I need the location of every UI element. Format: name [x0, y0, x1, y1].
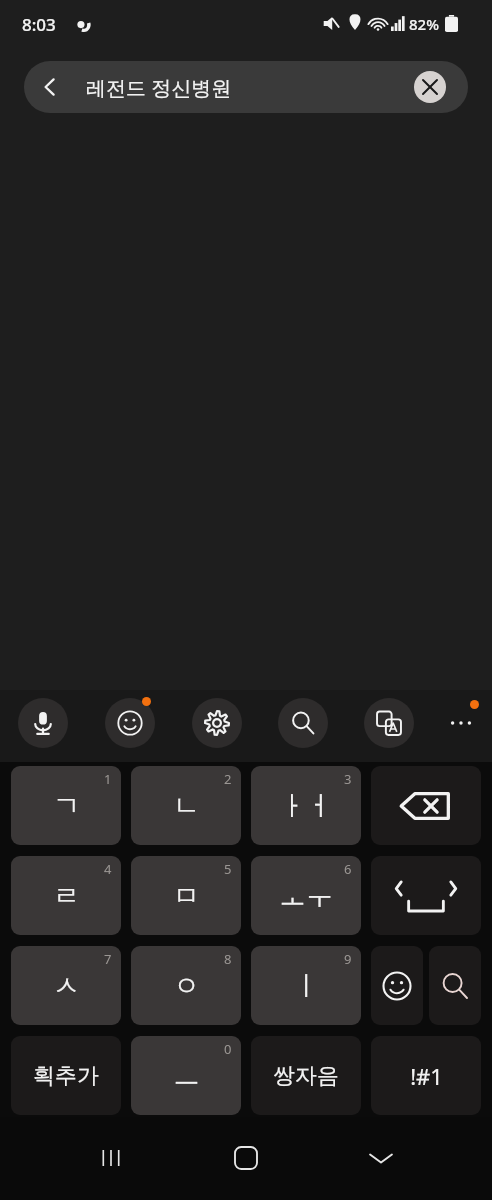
staticText: 3 [344, 770, 352, 788]
staticText: 6 [344, 860, 352, 878]
staticText: ㄴ [173, 789, 200, 823]
staticText: 레전드 정신병원 [86, 74, 232, 101]
button[interactable]: Search [429, 946, 481, 1025]
button[interactable]: Hide keyboard [356, 1133, 406, 1183]
staticText: 4 [104, 860, 112, 878]
button[interactable]: !#1 [371, 1036, 481, 1115]
staticText: 획추가 [33, 1062, 99, 1090]
button[interactable]: ㄱ [11, 766, 121, 845]
staticText: !#1 [410, 1061, 443, 1091]
staticText: 8:03 [22, 13, 56, 36]
button[interactable]: Clear [414, 71, 446, 103]
button[interactable]: ㄴ [131, 766, 241, 845]
button[interactable]: More options [437, 699, 485, 747]
button[interactable]: Voice input [18, 698, 68, 748]
button[interactable]: Recent apps [86, 1133, 136, 1183]
button[interactable]: Home [221, 1133, 271, 1183]
staticText: 2 [224, 770, 232, 788]
button[interactable]: Translate [364, 698, 414, 748]
button[interactable]: ㅣ [251, 946, 361, 1025]
staticText: ㄹ [53, 879, 80, 913]
button[interactable]: ㅏㅓ [251, 766, 361, 845]
button[interactable]: Emoji [105, 698, 155, 748]
button[interactable]: ㄹ [11, 856, 121, 935]
button[interactable]: ㅡ [131, 1036, 241, 1115]
staticText: 1 [104, 770, 112, 788]
staticText: 쌍자음 [273, 1062, 339, 1090]
staticText: ㅅ [53, 969, 80, 1003]
staticText: 0 [224, 1040, 232, 1058]
button[interactable]: ㅇ [131, 946, 241, 1025]
button[interactable]: ㅗㅜ [251, 856, 361, 935]
staticText: ㄱ [53, 789, 80, 823]
staticText: 7 [104, 950, 112, 968]
staticText: 8 [224, 950, 232, 968]
button[interactable]: ㅁ [131, 856, 241, 935]
button[interactable]: Space, language KR [371, 856, 481, 935]
button[interactable]: Search [278, 698, 328, 748]
staticText: 82% [409, 14, 439, 34]
button[interactable]: 획추가 [11, 1036, 121, 1115]
button[interactable]: Keyboard settings [192, 698, 242, 748]
staticText: ㅣ [293, 969, 320, 1003]
button[interactable]: ㅅ [11, 946, 121, 1025]
button[interactable]: Backspace [371, 766, 481, 845]
staticText: ㅏㅓ [279, 789, 333, 823]
button[interactable]: Back [30, 67, 70, 107]
staticText: ㅗㅜ [279, 879, 333, 913]
button[interactable]: 쌍자음 [251, 1036, 361, 1115]
staticText: 9 [344, 950, 352, 968]
staticText: ㅡ [173, 1059, 200, 1093]
staticText: ㅇ [173, 969, 200, 1003]
staticText: ㅁ [173, 879, 200, 913]
staticText: 5 [224, 860, 232, 878]
button[interactable]: Emoji [371, 946, 423, 1025]
